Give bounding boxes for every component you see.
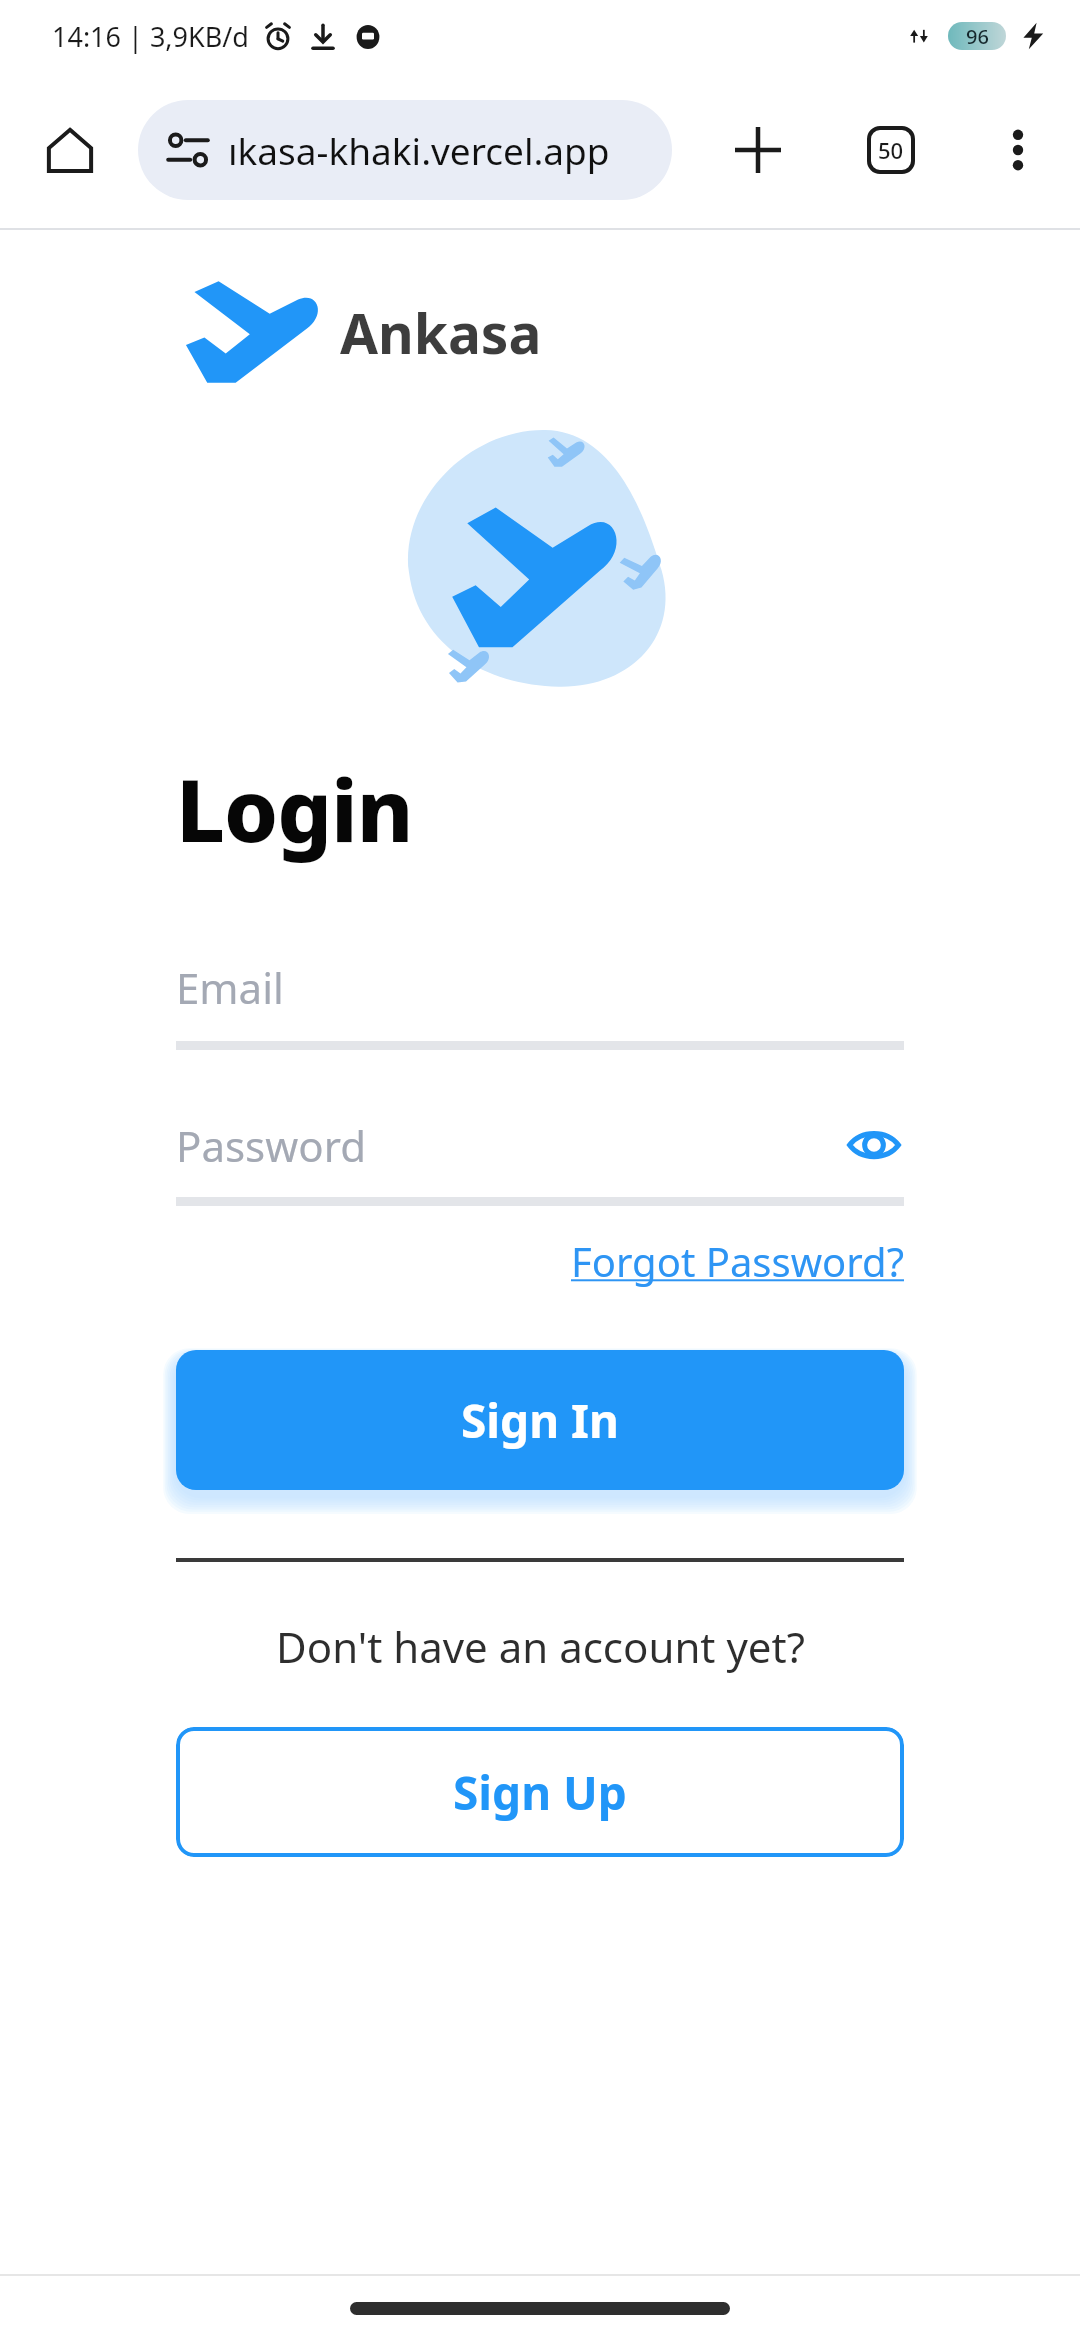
staticText: Sign In [461,1389,619,1452]
button[interactable]: Tabs [845,104,937,196]
button[interactable]: Forgot Password? [571,1234,904,1288]
staticText: Don't have an account yet? [276,1618,805,1675]
staticText: Forgot Password? [571,1234,904,1288]
staticText: Login [176,750,413,867]
button[interactable]: Email [176,959,904,1050]
button[interactable]: Sign In [176,1350,904,1490]
staticText: Email [176,959,284,1016]
staticText: Password [176,1117,366,1174]
button[interactable]: ıkasa-khaki.vercel.app [138,100,672,200]
button[interactable]: Sign Up [176,1727,904,1857]
staticText: Ankasa [340,295,542,370]
button[interactable]: More options [972,104,1064,196]
staticText: Sign Up [453,1761,627,1824]
staticText: 96 [966,23,989,50]
staticText: 50 [878,135,904,165]
button[interactable]: Home [24,104,116,196]
button[interactable]: Show password [844,1115,904,1175]
button[interactable]: New tab [712,104,804,196]
staticText: 14:16 | 3,9KB/d [52,18,249,55]
button[interactable]: Password [176,1115,904,1206]
staticText: ıkasa-khaki.vercel.app [228,125,610,175]
